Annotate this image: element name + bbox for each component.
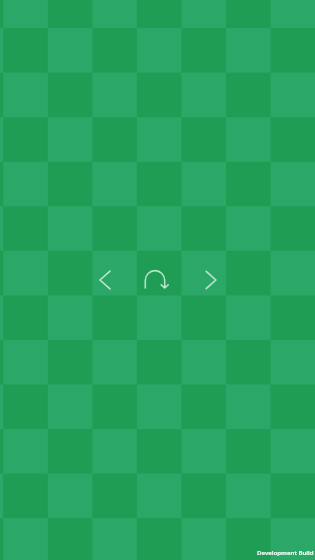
button[interactable]: Reload bbox=[133, 258, 177, 302]
button[interactable]: Go back bbox=[83, 258, 127, 302]
staticText: Development Build bbox=[257, 548, 314, 556]
button[interactable]: Go forward bbox=[189, 258, 233, 302]
